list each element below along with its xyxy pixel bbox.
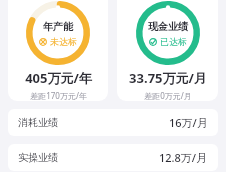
button[interactable]: 现金业绩 [117,0,218,101]
staticText: 12.8万/月 [159,150,208,165]
staticText: 现金业绩 [148,20,188,33]
button[interactable]: 实操业绩 [8,144,218,171]
staticText: 年产能 [43,20,73,33]
staticText: 16万/月 [169,115,208,130]
button[interactable]: 消耗业绩 [8,109,218,136]
button[interactable]: 年产能 [8,0,108,101]
staticText: 实操业绩 [18,151,58,164]
staticText: 已达标 [160,36,187,47]
staticText: 差距0万元/月 [144,90,192,101]
staticText: 差距170万元/年 [30,90,87,101]
staticText: 33.75万元/月 [129,69,207,87]
staticText: 405万元/年 [25,69,92,87]
staticText: 消耗业绩 [18,116,58,129]
staticText: 未达标 [50,36,77,47]
